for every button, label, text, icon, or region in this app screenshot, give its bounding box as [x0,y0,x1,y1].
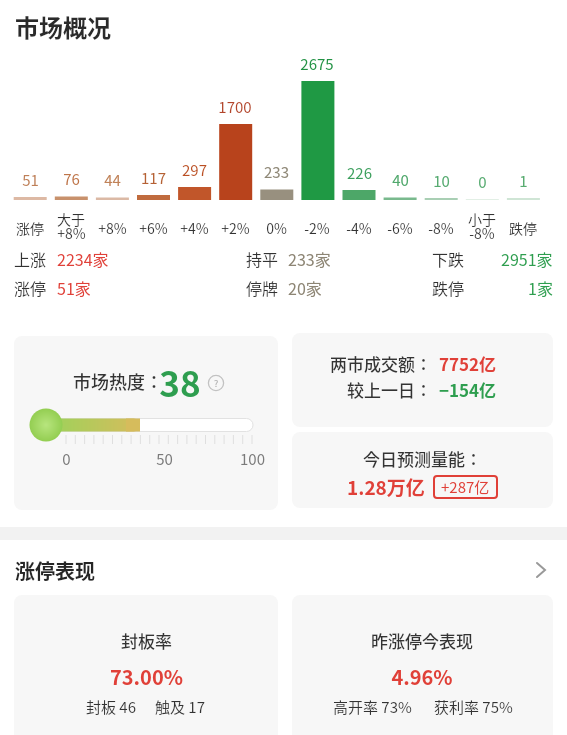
staticText: 封板率 [121,628,172,653]
staticText: 51 [22,169,39,191]
staticText: 10 [433,170,450,192]
staticText: 高开率 73% [333,696,412,718]
staticText: 1家 [528,276,553,299]
staticText: 0 [478,171,487,193]
staticText: +8% [57,223,86,243]
staticText: 小于 [468,209,496,229]
staticText: -6% [387,218,413,238]
staticText: +287亿 [441,476,490,498]
staticText: 0% [266,218,287,238]
staticText: 触及 17 [155,696,206,718]
staticText: 76 [63,168,80,190]
button[interactable]: 两市成交额： [292,333,553,427]
button[interactable]: 昨涨停今表现 [292,595,553,735]
staticText: 市场热度： [73,368,163,394]
staticText: 封板 46 [86,696,137,718]
staticText: 较上一日： [347,377,432,402]
staticText: 大于 [57,209,85,229]
staticText: 51家 [57,276,91,299]
staticText: 涨停表现 [15,556,95,585]
staticText: +4% [180,218,209,238]
staticText: -4% [346,218,372,238]
staticText: 50 [156,448,173,470]
staticText: 涨停 [14,276,47,299]
staticText: 297 [182,159,207,181]
staticText: 117 [141,167,166,189]
staticText: 跌停 [432,276,465,299]
staticText: 73.00% [110,662,183,691]
staticText: 涨停 [16,218,44,238]
staticText: ? [214,377,219,390]
staticText: 233家 [288,247,331,270]
staticText: 7752亿 [439,351,497,376]
staticText: 停牌 [246,276,279,299]
staticText: -2% [304,218,330,238]
staticText: 1 [519,170,528,192]
button[interactable]: ? [208,375,224,391]
staticText: −154亿 [439,377,497,402]
staticText: -8% [428,218,454,238]
staticText: 下跌 [432,247,465,270]
staticText: 2951家 [501,247,553,270]
button[interactable]: 市场热度： [14,336,278,510]
staticText: 0 [62,448,71,470]
staticText: 100 [240,448,265,470]
staticText: 昨涨停今表现 [371,628,473,653]
staticText: 2234家 [57,247,109,270]
staticText: 20家 [288,276,322,299]
staticText: 两市成交额： [330,351,432,376]
button[interactable]: 今日预测量能： [292,432,553,508]
button[interactable]: 封板率 [14,595,278,735]
staticText: 4.96% [391,662,453,691]
staticText: 1700 [218,96,252,118]
staticText: 2675 [300,53,334,75]
staticText: 44 [104,169,121,191]
staticText: -8% [469,223,495,243]
staticText: 市场概况 [15,9,111,44]
staticText: +8% [98,218,127,238]
staticText: 226 [347,162,372,184]
staticText: 跌停 [509,218,537,238]
staticText: 持平 [246,247,279,270]
staticText: 今日预测量能： [363,446,482,471]
staticText: +6% [139,218,168,238]
staticText: 40 [392,169,409,191]
staticText: 获利率 75% [434,696,513,718]
staticText: 1.28万亿 [347,473,425,501]
staticText: +2% [221,218,250,238]
staticText: 上涨 [14,247,47,270]
staticText: 233 [264,161,289,183]
button[interactable]: 涨停表现 [0,552,567,588]
staticText: 38 [159,356,201,407]
